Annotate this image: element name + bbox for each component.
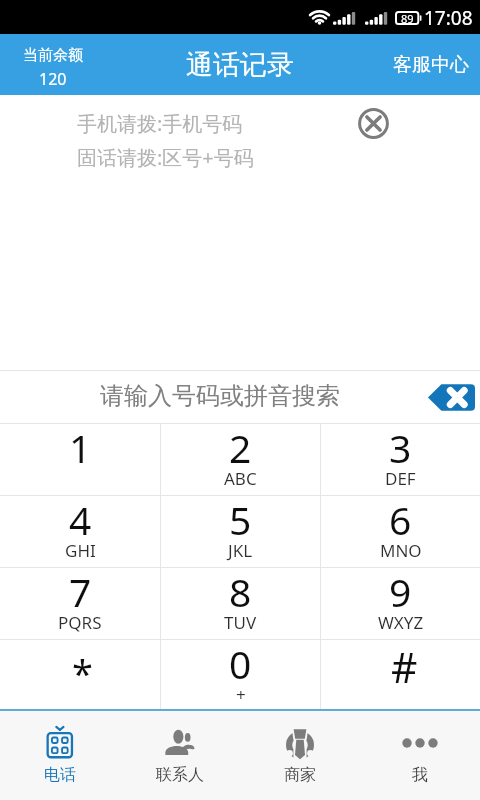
button[interactable]: 6 (321, 496, 480, 567)
button[interactable]: 5 (161, 496, 320, 567)
staticText: 当前余额 (23, 46, 83, 65)
staticText: TUV (224, 611, 257, 634)
staticText: 3 (389, 421, 412, 474)
button[interactable]: 我 (360, 711, 480, 800)
button[interactable]: 商家 (240, 711, 360, 800)
staticText: 7 (69, 565, 92, 618)
staticText: MNO (380, 539, 422, 562)
button[interactable]: * (0, 640, 160, 710)
button[interactable]: # (321, 640, 480, 710)
button[interactable]: 0 (161, 640, 320, 710)
staticText: 联系人 (156, 765, 204, 785)
staticText: 8 (229, 565, 252, 618)
staticText: DEF (385, 467, 416, 490)
staticText: 0 (229, 637, 252, 690)
button[interactable]: 当前余额 (0, 38, 97, 92)
staticText: 9 (389, 565, 412, 618)
staticText: 2 (229, 421, 252, 474)
button[interactable]: 1 (0, 424, 160, 495)
staticText: 电话 (44, 765, 76, 785)
button[interactable]: 3 (321, 424, 480, 495)
staticText: 手机请拨:手机号码 (77, 110, 243, 137)
button[interactable]: 电话 (0, 711, 120, 800)
staticText: 通话记录 (186, 48, 294, 82)
staticText: 固话请拨:区号+号码 (77, 144, 254, 171)
staticText: 1 (69, 421, 92, 474)
button[interactable]: Backspace (427, 383, 475, 412)
button[interactable]: 客服中心 (379, 41, 480, 89)
button[interactable]: 8 (161, 568, 320, 639)
staticText: ABC (224, 467, 257, 490)
staticText: * (72, 647, 93, 699)
button[interactable]: Clear (353, 103, 394, 144)
staticText: 5 (229, 493, 252, 546)
button[interactable]: 4 (0, 496, 160, 567)
staticText: JKL (228, 539, 253, 562)
staticText: 商家 (284, 765, 316, 785)
staticText: 我 (412, 765, 428, 785)
staticText: 客服中心 (393, 53, 469, 77)
staticText: 17:08 (424, 5, 473, 31)
staticText: 4 (69, 493, 92, 546)
staticText: # (391, 639, 418, 695)
button[interactable]: 联系人 (120, 711, 240, 800)
staticText: 6 (389, 493, 412, 546)
staticText: PQRS (58, 611, 102, 634)
button[interactable]: 7 (0, 568, 160, 639)
staticText: GHI (65, 539, 96, 562)
staticText: 89 (401, 11, 414, 25)
staticText: 请输入号码或拼音搜索 (100, 381, 340, 411)
button[interactable]: 2 (161, 424, 320, 495)
staticText: WXYZ (378, 611, 424, 634)
button[interactable]: 9 (321, 568, 480, 639)
staticText: + (236, 683, 246, 706)
staticText: 120 (39, 68, 67, 90)
